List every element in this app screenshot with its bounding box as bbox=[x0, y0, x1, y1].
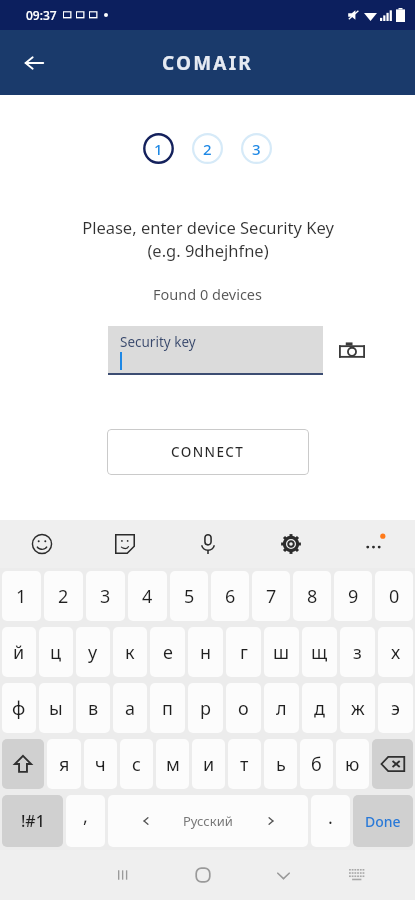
button[interactable]: о bbox=[226, 683, 261, 733]
button[interactable]: й bbox=[2, 627, 36, 677]
staticText: 3 bbox=[100, 584, 111, 609]
staticText: э bbox=[391, 696, 400, 721]
staticText: н bbox=[200, 640, 212, 665]
button[interactable]: т bbox=[228, 739, 261, 789]
button[interactable]: м bbox=[156, 739, 189, 789]
staticText: о bbox=[238, 696, 249, 721]
button[interactable]: , bbox=[66, 795, 105, 847]
button[interactable]: Backspace bbox=[372, 739, 413, 789]
button[interactable]: 3 bbox=[241, 133, 272, 164]
button[interactable]: у bbox=[76, 627, 110, 677]
button[interactable]: CONNECT bbox=[107, 429, 309, 475]
button[interactable]: е bbox=[150, 627, 185, 677]
button[interactable]: з bbox=[340, 627, 375, 677]
button[interactable]: Hide keyboard bbox=[243, 850, 323, 900]
button[interactable]: г bbox=[226, 627, 261, 677]
button[interactable]: п bbox=[150, 683, 185, 733]
staticText: . bbox=[328, 805, 333, 830]
staticText: у bbox=[88, 640, 98, 665]
button[interactable]: 4 bbox=[128, 571, 167, 621]
button[interactable]: Recent apps bbox=[83, 850, 163, 900]
staticText: 7 bbox=[266, 584, 277, 609]
button[interactable]: Space, Russian bbox=[108, 795, 308, 847]
staticText: , bbox=[83, 804, 88, 829]
button[interactable]: э bbox=[378, 683, 413, 733]
button[interactable]: б bbox=[300, 739, 333, 789]
button[interactable]: ж bbox=[340, 683, 375, 733]
staticText: Done bbox=[365, 812, 401, 831]
button[interactable]: Home bbox=[163, 850, 243, 900]
staticText: 1 bbox=[154, 139, 163, 159]
staticText: ч bbox=[95, 752, 106, 777]
staticText: ф bbox=[12, 696, 26, 721]
button[interactable]: . bbox=[311, 795, 350, 847]
button[interactable]: я bbox=[47, 739, 81, 789]
button[interactable]: х bbox=[378, 627, 413, 677]
button[interactable]: !#1 bbox=[2, 795, 63, 847]
button[interactable]: Security key bbox=[108, 326, 323, 373]
button[interactable]: 5 bbox=[170, 571, 208, 621]
button[interactable]: с bbox=[120, 739, 153, 789]
button[interactable]: д bbox=[302, 683, 337, 733]
staticText: м bbox=[166, 752, 180, 777]
button[interactable]: Scan with camera bbox=[337, 336, 367, 366]
staticText: б bbox=[311, 752, 322, 777]
staticText: д bbox=[314, 696, 325, 721]
button[interactable]: 1 bbox=[143, 133, 174, 164]
staticText: е bbox=[163, 640, 173, 665]
button[interactable]: 0 bbox=[375, 571, 413, 621]
staticText: Русский bbox=[183, 812, 233, 830]
button[interactable]: 2 bbox=[192, 133, 223, 164]
button[interactable]: ф bbox=[2, 683, 36, 733]
staticText: й bbox=[13, 640, 25, 665]
staticText: ш bbox=[273, 640, 290, 665]
button[interactable]: и bbox=[192, 739, 225, 789]
button[interactable]: ы bbox=[39, 683, 73, 733]
button[interactable]: р bbox=[188, 683, 223, 733]
button[interactable]: ь bbox=[264, 739, 297, 789]
button[interactable]: Stickers bbox=[83, 520, 166, 568]
staticText: р bbox=[200, 696, 211, 721]
staticText: а bbox=[125, 696, 136, 721]
button[interactable]: 1 bbox=[2, 571, 41, 621]
button[interactable]: Back bbox=[12, 41, 56, 85]
button[interactable]: 2 bbox=[44, 571, 83, 621]
staticText: л bbox=[276, 696, 287, 721]
staticText: к bbox=[125, 640, 135, 665]
button[interactable]: ц bbox=[39, 627, 73, 677]
button[interactable]: ш bbox=[264, 627, 299, 677]
button[interactable]: More options bbox=[332, 520, 415, 568]
button[interactable]: Voice input bbox=[166, 520, 249, 568]
button[interactable]: Keyboard settings bbox=[249, 520, 332, 568]
button[interactable]: 9 bbox=[334, 571, 372, 621]
staticText: 0 bbox=[389, 584, 400, 609]
staticText: и bbox=[203, 752, 215, 777]
button[interactable]: Shift bbox=[2, 739, 44, 789]
button[interactable]: 3 bbox=[86, 571, 125, 621]
staticText: с bbox=[132, 752, 141, 777]
button[interactable]: Change keyboard bbox=[323, 850, 391, 900]
button[interactable]: л bbox=[264, 683, 299, 733]
staticText: 2 bbox=[58, 584, 69, 609]
button[interactable]: 8 bbox=[293, 571, 331, 621]
staticText: х bbox=[391, 640, 401, 665]
staticText: в bbox=[88, 696, 99, 721]
button[interactable]: к bbox=[113, 627, 147, 677]
button[interactable]: ч bbox=[84, 739, 117, 789]
button[interactable]: в bbox=[76, 683, 110, 733]
button[interactable]: 7 bbox=[252, 571, 290, 621]
button[interactable]: а bbox=[113, 683, 147, 733]
button[interactable]: 6 bbox=[211, 571, 249, 621]
button[interactable]: ю bbox=[336, 739, 369, 789]
staticText: Please, enter device Security Key (e.g. … bbox=[82, 216, 334, 262]
button[interactable]: щ bbox=[302, 627, 337, 677]
button[interactable]: Done bbox=[353, 795, 413, 847]
staticText: COMAIR bbox=[162, 50, 253, 76]
staticText: ь bbox=[276, 752, 286, 777]
button[interactable]: Emoji bbox=[0, 520, 83, 568]
button[interactable]: н bbox=[188, 627, 223, 677]
staticText: 09:37 bbox=[26, 7, 57, 23]
staticText: CONNECT bbox=[171, 443, 245, 461]
staticText: з bbox=[353, 640, 362, 665]
staticText: 2 bbox=[203, 139, 212, 159]
